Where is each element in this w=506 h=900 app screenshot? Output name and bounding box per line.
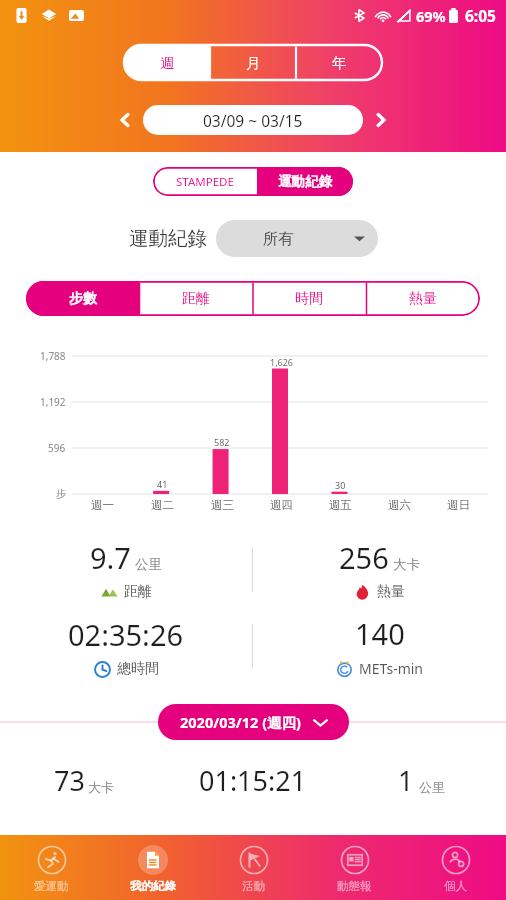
staticText: 大卡: [88, 779, 114, 795]
staticText: 活動: [242, 879, 265, 893]
staticText: 熱量: [409, 290, 437, 308]
button[interactable]: 步數: [26, 281, 139, 316]
staticText: 596: [48, 441, 66, 455]
button[interactable]: 月: [210, 45, 296, 80]
staticText: 9.7: [90, 538, 131, 577]
staticText: 01:15:21: [199, 762, 307, 799]
button[interactable]: 140: [253, 608, 506, 684]
staticText: 週四: [270, 498, 293, 512]
staticText: 週一: [91, 498, 114, 512]
button[interactable]: 週: [124, 45, 210, 80]
button[interactable]: 我的紀錄: [102, 835, 203, 900]
staticText: 73: [54, 762, 85, 799]
staticText: 140: [355, 614, 405, 653]
staticText: 愛運動: [34, 879, 69, 893]
staticText: 時間: [295, 290, 323, 308]
staticText: 41: [157, 478, 168, 490]
staticText: 69%: [416, 6, 446, 26]
staticText: 1,626: [270, 356, 294, 368]
staticText: 總時間: [117, 660, 159, 678]
button[interactable]: 256: [253, 530, 506, 608]
staticText: 6:05: [465, 5, 496, 26]
staticText: 我的紀錄: [130, 879, 176, 893]
button[interactable]: STAMPEDE: [153, 167, 353, 196]
staticText: 公里: [419, 779, 445, 795]
button[interactable]: Next period: [363, 103, 399, 137]
staticText: 週日: [447, 498, 470, 512]
staticText: 週五: [329, 498, 352, 512]
staticText: 1,192: [40, 395, 66, 409]
button[interactable]: 所有: [216, 220, 378, 257]
staticText: 2020/03/12 (週四): [180, 712, 301, 732]
staticText: 30: [335, 479, 346, 491]
staticText: 大卡: [393, 556, 420, 573]
staticText: 03/09 ~ 03/15: [203, 110, 303, 131]
staticText: 運動紀錄: [129, 226, 207, 251]
staticText: 所有: [263, 229, 294, 249]
staticText: 1: [398, 762, 414, 799]
staticText: 週六: [388, 498, 411, 512]
button[interactable]: 動態報: [304, 835, 405, 900]
staticText: 距離: [124, 583, 152, 601]
staticText: METs-min: [359, 659, 423, 678]
staticText: 256: [339, 538, 389, 577]
staticText: 月: [246, 54, 261, 72]
staticText: 步: [56, 487, 66, 500]
staticText: 02:35:26: [68, 615, 184, 654]
button[interactable]: 03/09 ~ 03/15: [143, 105, 363, 135]
staticText: 週: [160, 54, 175, 72]
button[interactable]: Previous period: [107, 103, 143, 137]
staticText: 582: [214, 436, 230, 448]
button[interactable]: 距離: [139, 281, 252, 316]
button[interactable]: 2020/03/12 (週四): [158, 704, 349, 740]
staticText: 個人: [444, 879, 467, 893]
staticText: 動態報: [337, 879, 372, 893]
button[interactable]: 活動: [203, 835, 304, 900]
staticText: 年: [332, 54, 347, 72]
staticText: 1,788: [40, 349, 66, 363]
staticText: 熱量: [377, 583, 405, 601]
button[interactable]: 愛運動: [0, 835, 102, 900]
button[interactable]: 年: [296, 45, 382, 80]
button[interactable]: 熱量: [366, 281, 480, 316]
button[interactable]: 02:35:26: [0, 608, 252, 684]
staticText: 運動紀錄: [278, 173, 332, 190]
staticText: 週三: [211, 498, 234, 512]
staticText: 週二: [151, 498, 174, 512]
button[interactable]: 時間: [252, 281, 366, 316]
staticText: 公里: [135, 556, 162, 573]
staticText: 距離: [182, 290, 210, 308]
button[interactable]: 個人: [405, 835, 506, 900]
button[interactable]: 9.7: [0, 530, 252, 608]
staticText: STAMPEDE: [176, 174, 234, 190]
staticText: 步數: [69, 290, 97, 308]
